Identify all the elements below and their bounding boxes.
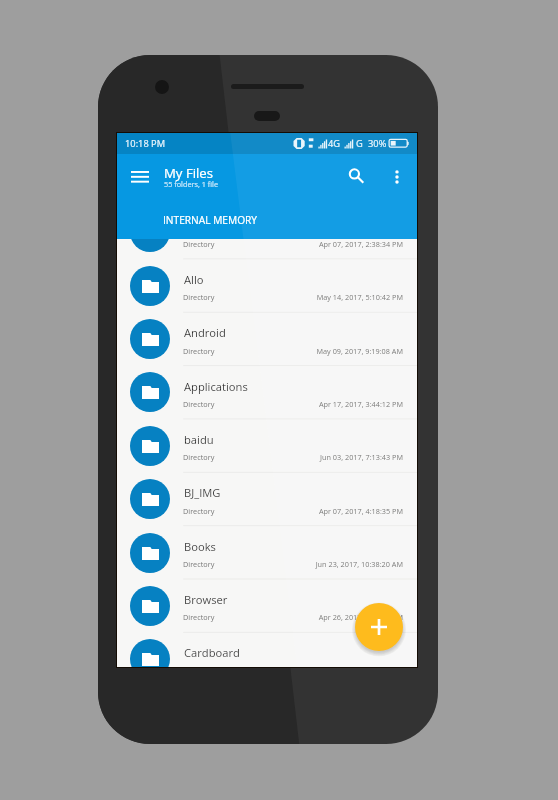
staticText: Books [184, 539, 216, 554]
staticText: Directory [183, 612, 215, 622]
staticText: 10:18 PM [125, 137, 166, 150]
button[interactable]: Add [355, 603, 403, 651]
staticText: My Files [164, 164, 214, 182]
button[interactable] [117, 632, 417, 667]
staticText: Jun 03, 2017, 7:13:43 PM [293, 452, 403, 462]
staticText: Applications [184, 379, 248, 394]
staticText: Directory [183, 346, 215, 356]
staticText: Jun 23, 2017, 10:38:20 AM [293, 559, 403, 569]
staticText: baidu [184, 432, 214, 447]
button[interactable] [117, 186, 417, 239]
staticText: May 09, 2017, 9:19:08 AM [293, 346, 403, 356]
button[interactable] [117, 419, 417, 472]
button[interactable]: Navigation menu [124, 161, 156, 193]
staticText: Apr 07, 2017, 2:38:34 PM [293, 239, 403, 249]
staticText: INTERNAL MEMORY [163, 213, 258, 227]
staticText: Directory [183, 399, 215, 409]
staticText: 30% [368, 137, 387, 150]
staticText: Apr 07, 2017, 4:18:35 PM [293, 506, 403, 516]
staticText: Browser [184, 592, 228, 607]
staticText: 55 folders, 1 file [164, 179, 219, 189]
staticText: Allo [184, 272, 204, 287]
button[interactable] [117, 312, 417, 365]
staticText: Directory [183, 506, 215, 516]
button[interactable]: More options [381, 161, 413, 193]
button[interactable]: INTERNAL MEMORY [155, 207, 266, 233]
staticText: G [356, 137, 363, 150]
staticText: May 14, 2017, 5:10:42 PM [293, 292, 403, 302]
button[interactable] [117, 526, 417, 579]
staticText: 4G [328, 137, 341, 150]
staticText: Cardboard [184, 645, 240, 660]
staticText: Apr 26, 2017, 9:18:04 AM [293, 612, 403, 622]
staticText: Android [184, 325, 226, 340]
staticText: Directory [183, 452, 215, 462]
staticText: Apr 17, 2017, 3:44:12 PM [293, 399, 403, 409]
button[interactable]: Search [340, 160, 372, 192]
staticText: Directory [183, 292, 215, 302]
button[interactable] [117, 259, 417, 312]
staticText: BJ_IMG [184, 485, 221, 500]
staticText: Directory [183, 239, 215, 249]
button[interactable] [117, 579, 417, 632]
staticText: Directory [183, 559, 215, 569]
button[interactable] [117, 366, 417, 419]
button[interactable] [117, 472, 417, 525]
